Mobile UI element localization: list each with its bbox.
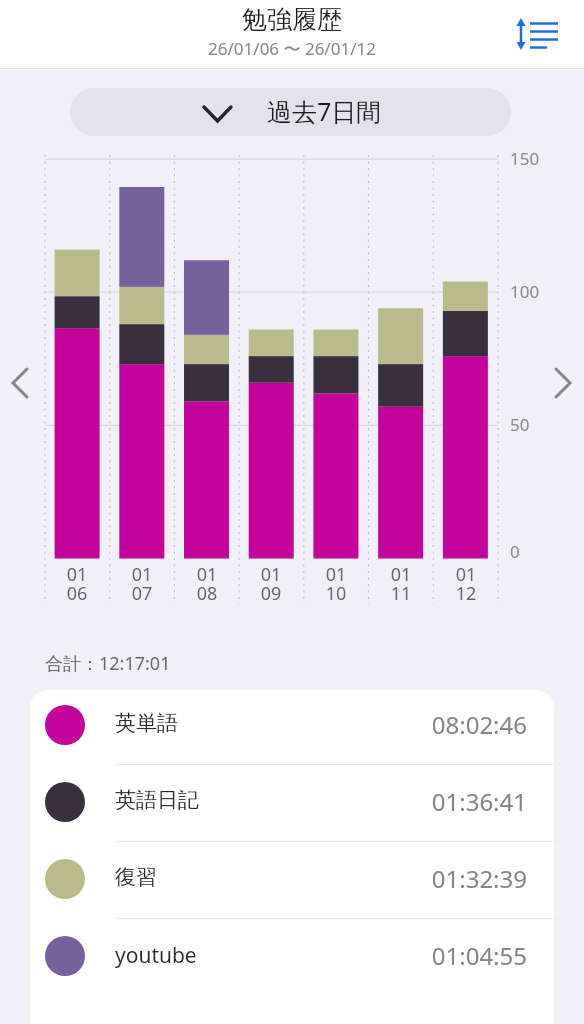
staticText: 01:04:55 [355, 939, 527, 972]
staticText: 01:32:39 [355, 862, 527, 895]
staticText: 勉強履歴 [0, 4, 584, 35]
staticText: 01 08 [175, 562, 239, 606]
staticText: 50 [510, 413, 530, 436]
staticText: 08:02:46 [355, 708, 527, 741]
staticText: 過去7日間 [267, 94, 382, 128]
staticText: 01 09 [239, 562, 303, 606]
staticText: 英語日記 [115, 787, 199, 813]
staticText: 0 [510, 540, 520, 563]
staticText: 英単語 [115, 710, 178, 736]
staticText: 26/01/06 〜 26/01/12 [0, 37, 584, 60]
staticText: 合計：12:17:01 [45, 651, 171, 676]
staticText: 100 [510, 280, 540, 303]
staticText: 01 12 [434, 562, 498, 606]
staticText: 150 [510, 147, 540, 170]
staticText: 01 07 [110, 562, 174, 606]
staticText: 復習 [115, 864, 157, 890]
staticText: 01 06 [45, 562, 109, 606]
staticText: 01:36:41 [355, 785, 527, 818]
staticText: youtube [115, 941, 197, 970]
staticText: 01 10 [304, 562, 368, 606]
staticText: 01 11 [369, 562, 433, 606]
